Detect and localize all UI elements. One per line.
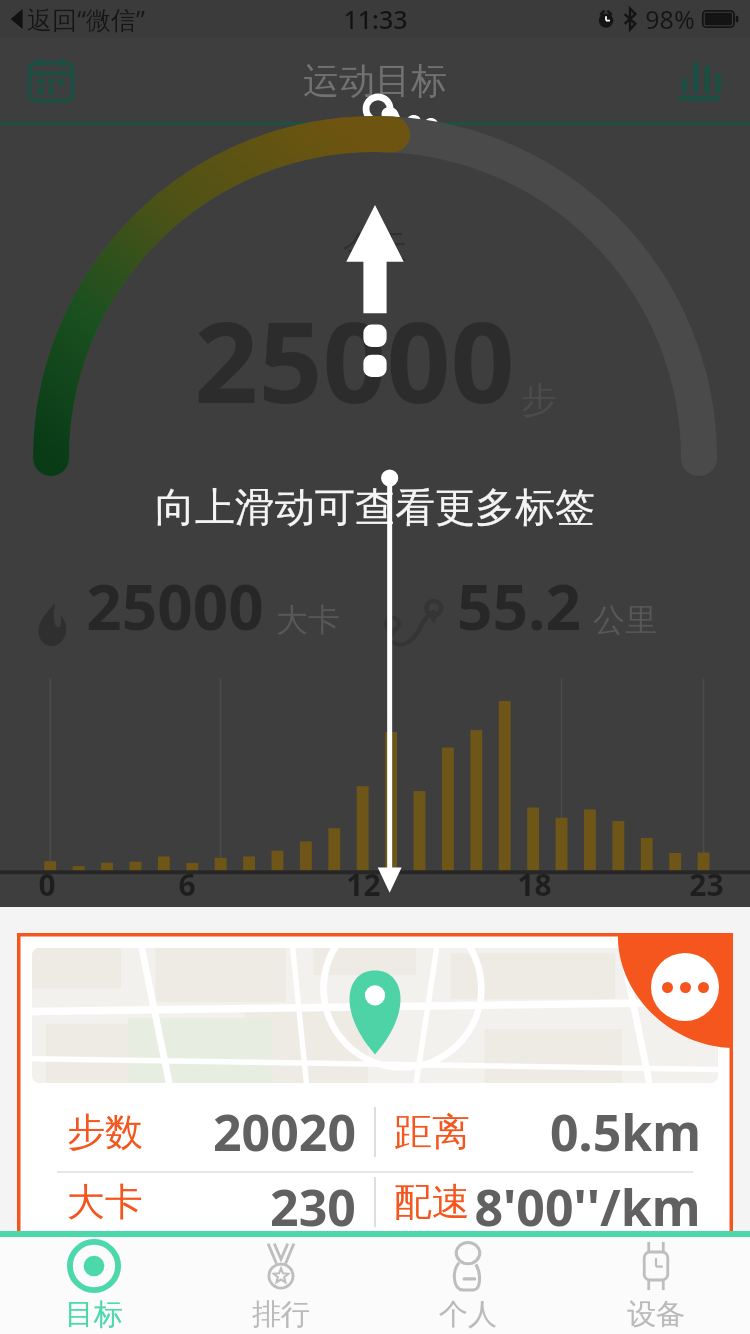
staticText: 目标 xyxy=(65,1296,123,1333)
staticText: 排行 xyxy=(252,1296,310,1333)
staticText: 8'00''/km xyxy=(474,1173,701,1231)
staticText: 大卡 xyxy=(67,1178,143,1226)
button[interactable]: 排行 xyxy=(187,1237,374,1334)
staticText: 配速 xyxy=(394,1178,470,1226)
staticText: 公里 xyxy=(593,600,657,640)
staticText: 向上滑动可查看更多标签 xyxy=(155,482,595,532)
staticText: 98% xyxy=(645,2,695,36)
staticText: 11:33 xyxy=(343,2,408,36)
staticText: 230 xyxy=(270,1173,356,1231)
staticText: 55.2 xyxy=(457,564,581,648)
staticText: 23 xyxy=(689,864,724,905)
staticText: 距离 xyxy=(394,1108,470,1156)
staticText: 18 xyxy=(517,864,552,905)
staticText: 返回“微信” xyxy=(27,2,145,36)
button[interactable]: More options xyxy=(651,953,719,1021)
staticText: 大卡 xyxy=(276,600,340,640)
staticText: 个人 xyxy=(439,1296,497,1333)
staticText: 6 xyxy=(178,864,196,905)
button[interactable]: Calendar xyxy=(18,47,84,113)
staticText: 12 xyxy=(346,864,381,905)
button[interactable]: 设备 xyxy=(562,1237,750,1334)
staticText: 0 xyxy=(38,864,56,905)
staticText: 设备 xyxy=(627,1296,685,1333)
button[interactable]: 目标 xyxy=(0,1237,187,1334)
button[interactable]: 个人 xyxy=(374,1237,562,1334)
staticText: 步 xyxy=(521,377,557,422)
staticText: 今天 xyxy=(343,227,407,267)
button[interactable]: 步数 xyxy=(17,933,733,1231)
staticText: 20020 xyxy=(213,1098,356,1166)
staticText: 25000 xyxy=(194,283,515,436)
button[interactable]: Statistics xyxy=(666,47,732,113)
staticText: 0.5km xyxy=(550,1098,701,1166)
staticText: 运动目标 xyxy=(303,58,447,103)
staticText: 步数 xyxy=(67,1108,143,1156)
staticText: 25000 xyxy=(86,564,264,648)
